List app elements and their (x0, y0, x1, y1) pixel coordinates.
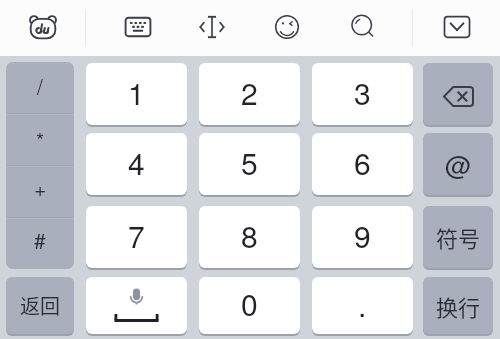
staticText: 4 (128, 141, 145, 184)
staticText: 2 (241, 71, 258, 114)
staticText: 返回 (20, 291, 60, 320)
button[interactable]: 4 (86, 133, 187, 195)
staticText: 6 (354, 141, 371, 184)
button[interactable]: Move cursor (188, 3, 236, 51)
button[interactable]: Baidu input method (19, 3, 67, 51)
button[interactable]: 9 (312, 206, 413, 268)
staticText: / (37, 71, 43, 101)
button[interactable]: Voice input and space (86, 277, 187, 334)
button[interactable]: 2 (199, 63, 300, 125)
button[interactable]: 符号 (423, 206, 493, 268)
staticText: . (358, 283, 367, 326)
button[interactable]: 换行 (423, 277, 493, 334)
staticText: 符号 (436, 221, 481, 253)
staticText: + (34, 173, 47, 203)
button[interactable]: * (6, 114, 74, 166)
staticText: 7 (128, 214, 145, 257)
staticText: 3 (354, 71, 371, 114)
staticText: 9 (354, 214, 371, 257)
button[interactable]: 3 (312, 63, 413, 125)
staticText: 8 (241, 214, 258, 257)
button[interactable]: 7 (86, 206, 187, 268)
staticText: @ (445, 145, 472, 182)
button[interactable]: @ (423, 133, 493, 195)
button[interactable]: Keyboard layout (114, 3, 162, 51)
button[interactable]: 1 (86, 63, 187, 125)
staticText: 换行 (436, 290, 481, 322)
button[interactable]: Hide keyboard (433, 3, 481, 51)
button[interactable]: Backspace (423, 63, 493, 125)
button[interactable]: 6 (312, 133, 413, 195)
button[interactable]: 5 (199, 133, 300, 195)
button[interactable]: # (6, 218, 74, 269)
button[interactable]: + (6, 166, 74, 218)
staticText: * (36, 125, 45, 155)
staticText: 1 (128, 71, 145, 114)
button[interactable]: Search (338, 2, 386, 50)
button[interactable]: / (6, 62, 74, 114)
staticText: 0 (241, 282, 258, 325)
button[interactable]: Emoji (263, 3, 311, 51)
button[interactable]: 0 (199, 277, 300, 334)
staticText: 5 (241, 141, 258, 184)
button[interactable]: 返回 (6, 277, 74, 334)
button[interactable]: 8 (199, 206, 300, 268)
staticText: # (34, 225, 46, 255)
button[interactable]: . (312, 277, 413, 334)
